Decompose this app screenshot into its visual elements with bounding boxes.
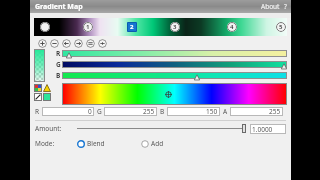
button[interactable]: 4 [227, 22, 237, 32]
staticText: A [223, 107, 230, 116]
button[interactable]: Eyedropper [34, 93, 42, 101]
button[interactable]: Current colour [43, 93, 51, 101]
staticText: R [35, 107, 42, 116]
button[interactable]: 255 [230, 107, 283, 116]
button[interactable] [63, 84, 286, 104]
staticText: 150 [206, 107, 218, 116]
button[interactable]: 150 [167, 107, 220, 116]
staticText: B [160, 107, 167, 116]
button[interactable]: About [261, 2, 280, 11]
staticText: Gradient Map [35, 2, 83, 12]
staticText: R [56, 49, 61, 58]
button[interactable]: Move right [74, 39, 83, 48]
staticText: Mode: [35, 139, 77, 148]
button[interactable] [62, 61, 287, 69]
staticText: ? [284, 2, 287, 11]
button[interactable]: 5 [276, 22, 286, 32]
staticText: Amount: [35, 124, 77, 133]
staticText: 1 [86, 23, 90, 31]
staticText: G [97, 107, 104, 116]
staticText: 255 [143, 107, 155, 116]
button[interactable]: Add [141, 139, 164, 148]
button[interactable] [40, 22, 50, 32]
staticText: 5 [279, 23, 283, 31]
staticText: B [56, 71, 61, 80]
button[interactable]: 3 [170, 22, 180, 32]
button[interactable] [62, 72, 287, 80]
button[interactable]: 2 [127, 22, 137, 32]
button[interactable]: 255 [104, 107, 157, 116]
button[interactable]: 1 [83, 22, 93, 32]
button[interactable]: Help [284, 2, 287, 11]
staticText: 255 [269, 107, 281, 116]
staticText: About [261, 2, 280, 11]
staticText: Blend [87, 139, 105, 148]
staticText: 0 [88, 107, 92, 116]
staticText: 3 [173, 23, 177, 31]
button[interactable]: 1.0000 [250, 124, 286, 134]
staticText: 1.0000 [252, 125, 273, 134]
staticText: 4 [230, 23, 234, 31]
button[interactable]: 0 [42, 107, 94, 116]
staticText: 2 [130, 23, 134, 31]
button[interactable]: Reset [98, 39, 107, 48]
button[interactable]: Warning [43, 84, 51, 92]
staticText: Add [151, 139, 164, 148]
button[interactable]: Move left [62, 39, 71, 48]
button[interactable] [77, 123, 246, 134]
button[interactable]: Swap [86, 39, 95, 48]
staticText: G [56, 60, 61, 69]
button[interactable]: Remove stop [50, 39, 59, 48]
button[interactable]: Add stop [38, 39, 47, 48]
button[interactable]: Palette [34, 84, 42, 92]
button[interactable] [62, 50, 287, 58]
button[interactable]: Blend [77, 139, 105, 148]
